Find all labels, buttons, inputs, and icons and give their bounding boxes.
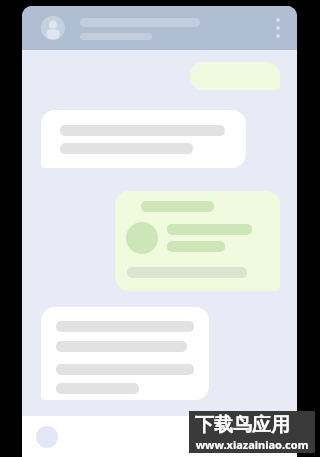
button[interactable]: Contact avatar (22, 6, 297, 50)
staticText: www.xiazainiao.com (189, 437, 315, 451)
button[interactable]: Add attachment (36, 426, 58, 448)
staticText: 下载鸟应用 (195, 413, 290, 437)
button[interactable] (115, 191, 280, 291)
button[interactable]: More options (265, 14, 291, 42)
button[interactable] (41, 110, 246, 168)
button[interactable] (190, 62, 280, 90)
button[interactable] (41, 307, 209, 400)
button[interactable]: Contact avatar (41, 16, 65, 40)
